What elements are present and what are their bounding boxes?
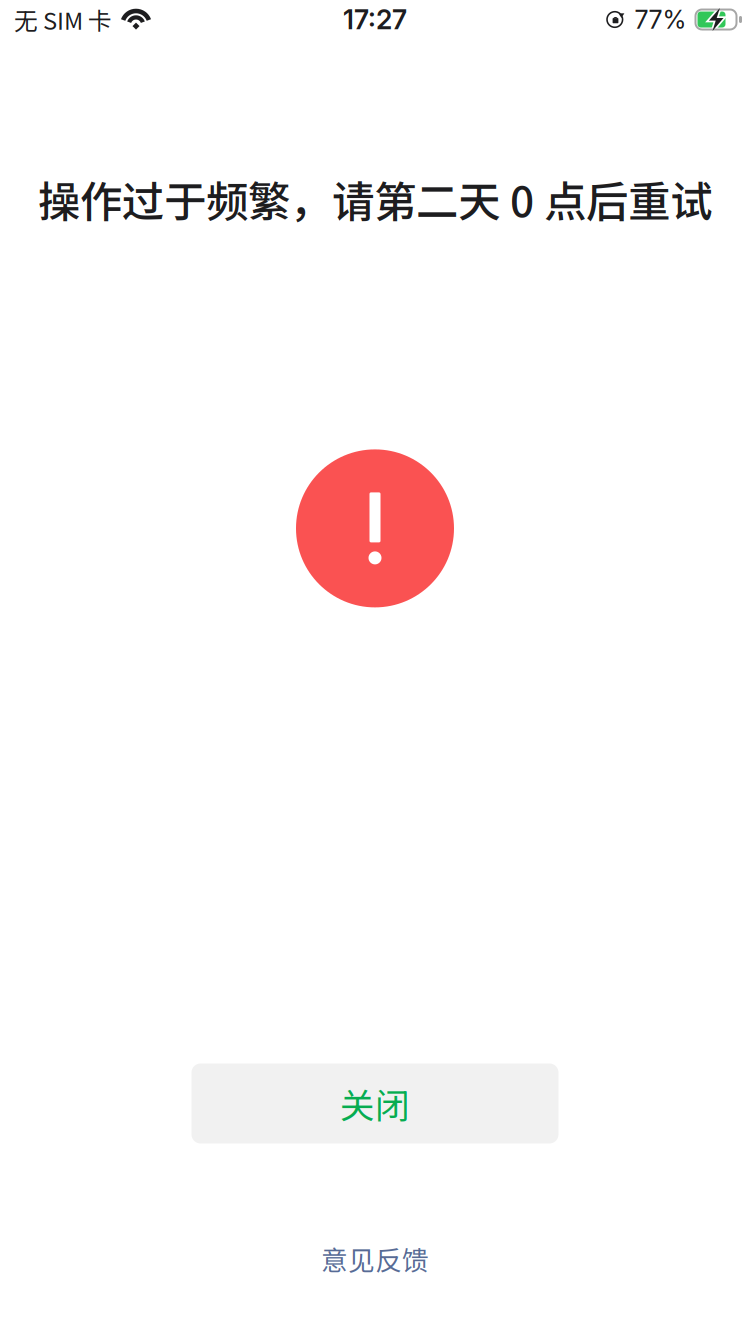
staticText: 17:27 [343,3,407,36]
staticText: 无 SIM 卡 [14,2,112,37]
button[interactable]: 意见反馈 [285,1234,465,1282]
staticText: 77% [634,4,686,35]
staticText: 操作过于频繁，请第二天 0 点后重试 [38,168,712,229]
staticText: 关闭 [340,1078,410,1129]
staticText: 意见反馈 [321,1239,429,1278]
button[interactable]: 关闭 [191,1063,558,1143]
